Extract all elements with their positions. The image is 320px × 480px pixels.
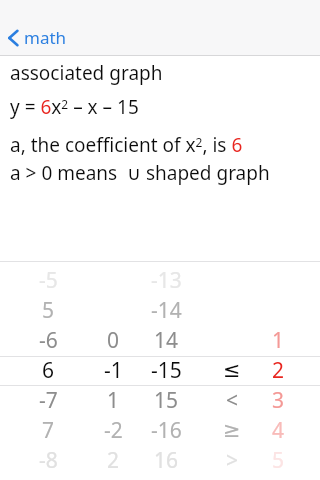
staticText: 4	[272, 416, 285, 445]
button[interactable]: -5	[0, 261, 320, 480]
staticText: associated graph	[10, 60, 163, 86]
staticText: -16	[151, 416, 182, 445]
staticText: 2	[107, 446, 120, 475]
staticText: 16	[154, 446, 179, 475]
staticText: 5	[42, 296, 55, 325]
staticText: -7	[39, 386, 58, 415]
staticText: -8	[39, 446, 58, 475]
button[interactable]: Back	[0, 22, 79, 53]
other: Back	[8, 29, 19, 47]
staticText: 6	[42, 356, 55, 385]
staticText: -6	[39, 326, 58, 355]
staticText: 14	[154, 326, 179, 355]
staticText: ≤	[223, 358, 241, 382]
staticText: 3	[272, 386, 285, 415]
staticText: 15	[154, 386, 179, 415]
staticText: -13	[151, 266, 182, 295]
staticText: 1	[107, 386, 120, 415]
staticText: 2	[272, 356, 285, 385]
staticText: -5	[39, 266, 58, 295]
staticText: >	[226, 446, 239, 475]
staticText: 7	[42, 416, 55, 445]
staticText: a, the coefficient of x2, is 6	[10, 132, 243, 158]
staticText: ≥	[223, 418, 241, 442]
staticText: math	[24, 26, 67, 49]
staticText: y = 6x2 – x – 15	[10, 94, 139, 120]
staticText: 1	[272, 326, 285, 355]
staticText: a > 0 means ∪ shaped graph	[10, 160, 270, 186]
staticText: -1	[104, 356, 123, 385]
staticText: -2	[104, 416, 123, 445]
staticText: -14	[151, 296, 182, 325]
staticText: 5	[272, 446, 285, 475]
staticText: -15	[151, 356, 182, 385]
staticText: 0	[107, 326, 120, 355]
staticText: <	[226, 386, 239, 415]
